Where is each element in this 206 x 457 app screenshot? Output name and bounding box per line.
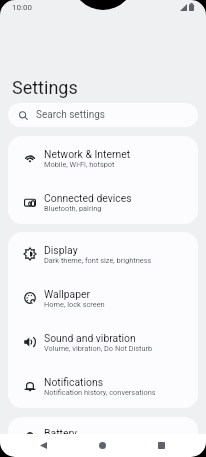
button[interactable]: Wallpaper xyxy=(8,276,198,320)
button[interactable]: Notifications xyxy=(8,364,198,408)
button[interactable]: Recent apps xyxy=(140,434,183,457)
staticText: Wallpaper xyxy=(44,288,91,300)
staticText: Sound and vibration xyxy=(44,332,136,344)
button[interactable]: Sound and vibration xyxy=(8,320,198,364)
staticText: 10:00 xyxy=(12,3,32,12)
staticText: Notifications xyxy=(44,376,104,388)
button[interactable]: Home xyxy=(81,434,124,457)
staticText: Display xyxy=(44,244,78,256)
button[interactable]: Back xyxy=(22,434,65,457)
button[interactable]: Display xyxy=(8,232,198,276)
staticText: Search settings xyxy=(36,109,105,121)
staticText: Bluetooth, pairing xyxy=(44,204,102,213)
staticText: Dark theme, font size, brightness xyxy=(44,256,152,265)
button[interactable]: Network & Internet xyxy=(8,136,198,180)
staticText: Volume, vibration, Do Not Disturb xyxy=(44,344,153,353)
button[interactable]: Battery xyxy=(8,417,198,457)
staticText: Settings xyxy=(12,77,78,98)
staticText: 100% xyxy=(44,439,62,448)
staticText: Notification history, conversations xyxy=(44,388,156,397)
staticText: Home, lock screen xyxy=(44,300,105,309)
staticText: Connected devices xyxy=(44,192,132,204)
staticText: Battery xyxy=(44,427,77,439)
staticText: Mobile, Wi-Fi, hotspot xyxy=(44,160,115,169)
button[interactable]: Connected devices xyxy=(8,180,198,224)
staticText: Network & Internet xyxy=(44,148,131,160)
button[interactable]: Search settings xyxy=(8,103,198,127)
